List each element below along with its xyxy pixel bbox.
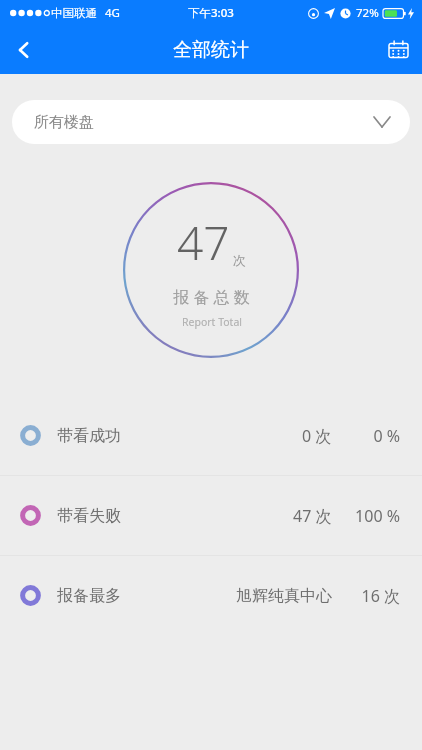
staticText: 旭辉纯真中心	[236, 586, 332, 606]
staticText: 4G	[105, 5, 120, 21]
staticText: Report Total	[182, 315, 242, 329]
staticText: 16 次	[361, 585, 400, 607]
button[interactable]: 报备最多	[0, 556, 422, 635]
staticText: 报 备 总 数	[173, 286, 250, 308]
staticText: 中国联通	[51, 6, 97, 20]
staticText: 47	[177, 211, 230, 274]
staticText: 下午3:03	[188, 5, 234, 21]
staticText: 47 次	[293, 505, 332, 527]
staticText: 0 %	[373, 425, 400, 447]
staticText: 带看成功	[57, 426, 121, 446]
button[interactable]: 带看成功	[0, 396, 422, 475]
staticText: 0 次	[302, 425, 332, 447]
button[interactable]: 带看失败	[0, 476, 422, 555]
staticText: 次	[233, 252, 246, 268]
staticText: 报备最多	[57, 586, 121, 606]
staticText: 72%	[356, 5, 379, 21]
button[interactable]: Back	[0, 26, 48, 74]
staticText: 全部统计	[173, 38, 249, 62]
staticText: 带看失败	[57, 506, 121, 526]
button[interactable]: Calendar	[374, 26, 422, 74]
button[interactable]: 所有楼盘	[12, 100, 410, 144]
staticText: 100 %	[355, 505, 400, 527]
staticText: 所有楼盘	[34, 113, 94, 132]
